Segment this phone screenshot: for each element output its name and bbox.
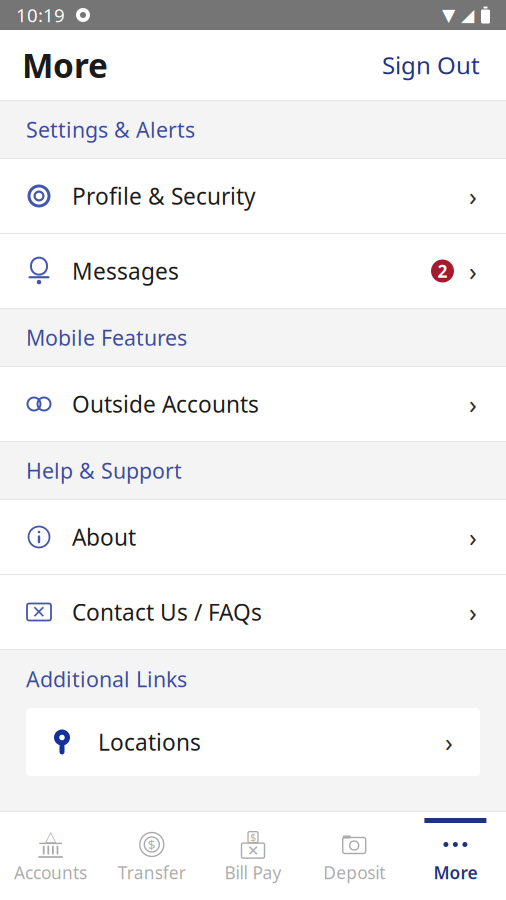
staticText: More [22,43,108,87]
button[interactable]: $ [101,812,202,900]
staticText: ▼ [442,5,455,25]
staticText: › [445,725,453,759]
staticText: › [469,179,477,213]
staticText: Profile & Security [72,181,256,211]
button[interactable]: ✕ [0,575,506,649]
staticText: 10:19 [16,3,65,27]
staticText: Contact Us / FAQs [72,597,262,627]
button[interactable]: More [405,812,506,900]
staticText: About [72,522,136,552]
staticText: Outside Accounts [72,389,259,419]
staticText: Deposit [323,861,385,884]
staticText: › [469,595,477,629]
staticText: Locations [98,727,201,757]
staticText: › [469,387,477,421]
staticText: $ [148,836,156,853]
staticText: Messages [72,256,179,286]
staticText: Additional Links [26,665,187,693]
staticText: ◢ [461,5,474,25]
button[interactable]: Locations [26,708,480,776]
staticText: $ [250,830,256,844]
button[interactable]: Sign Out [378,39,484,91]
staticText: 2 [437,259,447,282]
staticText: ✕ [31,602,46,622]
button[interactable]: Messages [0,234,506,308]
staticText: Mobile Features [26,323,187,352]
staticText: △ [45,828,56,844]
button[interactable]: About [0,500,506,574]
staticText: More [433,861,477,884]
staticText: › [469,520,477,554]
staticText: Accounts [14,861,87,884]
staticText: Transfer [118,861,186,884]
staticText: › [469,254,477,288]
button[interactable]: Outside Accounts [0,367,506,441]
staticText: Sign Out [382,49,480,81]
button[interactable]: △ [0,812,101,900]
button[interactable]: Deposit [304,812,405,900]
button[interactable]: Profile & Security [0,159,506,233]
staticText: Settings & Alerts [26,115,195,144]
button[interactable]: $ [202,812,304,900]
staticText: Bill Pay [224,861,281,884]
staticText: ✕ [247,842,259,859]
staticText: Help & Support [26,456,182,485]
